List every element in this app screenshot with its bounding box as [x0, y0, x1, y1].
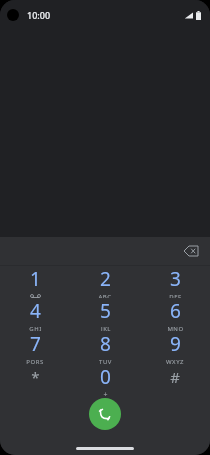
staticText: 9	[170, 331, 181, 357]
staticText: #	[170, 367, 180, 387]
button[interactable]: Call	[89, 398, 121, 430]
staticText: 2	[100, 266, 111, 292]
button[interactable]: 7	[0, 331, 70, 364]
staticText: 0	[100, 364, 111, 390]
button[interactable]: 1	[0, 266, 70, 298]
staticText: 10:00	[27, 9, 51, 21]
button[interactable]: 4	[0, 298, 70, 331]
button[interactable]: 5	[70, 298, 140, 331]
staticText: GHI	[29, 325, 42, 331]
button[interactable]: 9	[140, 331, 210, 364]
staticText: TUV	[99, 358, 112, 364]
staticText: 5	[100, 298, 111, 324]
staticText: ABC	[98, 293, 112, 298]
staticText: 8	[100, 331, 111, 357]
staticText: +	[103, 390, 108, 397]
button[interactable]: 3	[140, 266, 210, 298]
staticText: PQRS	[26, 358, 44, 364]
button[interactable]: *	[0, 364, 70, 397]
staticText: WXYZ	[166, 358, 184, 364]
button[interactable]: 6	[140, 298, 210, 331]
button[interactable]: 0	[70, 364, 140, 397]
staticText: 6	[170, 298, 181, 324]
staticText: *	[31, 367, 40, 387]
button[interactable]: Backspace	[180, 240, 202, 262]
staticText: 1	[30, 266, 41, 292]
staticText: 4	[30, 298, 41, 324]
button[interactable]: #	[140, 364, 210, 397]
staticText: MNO	[167, 325, 184, 331]
staticText: 3	[170, 266, 181, 292]
button[interactable]: 2	[70, 266, 140, 298]
button[interactable]: 8	[70, 331, 140, 364]
staticText: JKL	[101, 325, 111, 331]
staticText: DEF	[169, 293, 182, 298]
staticText: 7	[30, 331, 41, 357]
